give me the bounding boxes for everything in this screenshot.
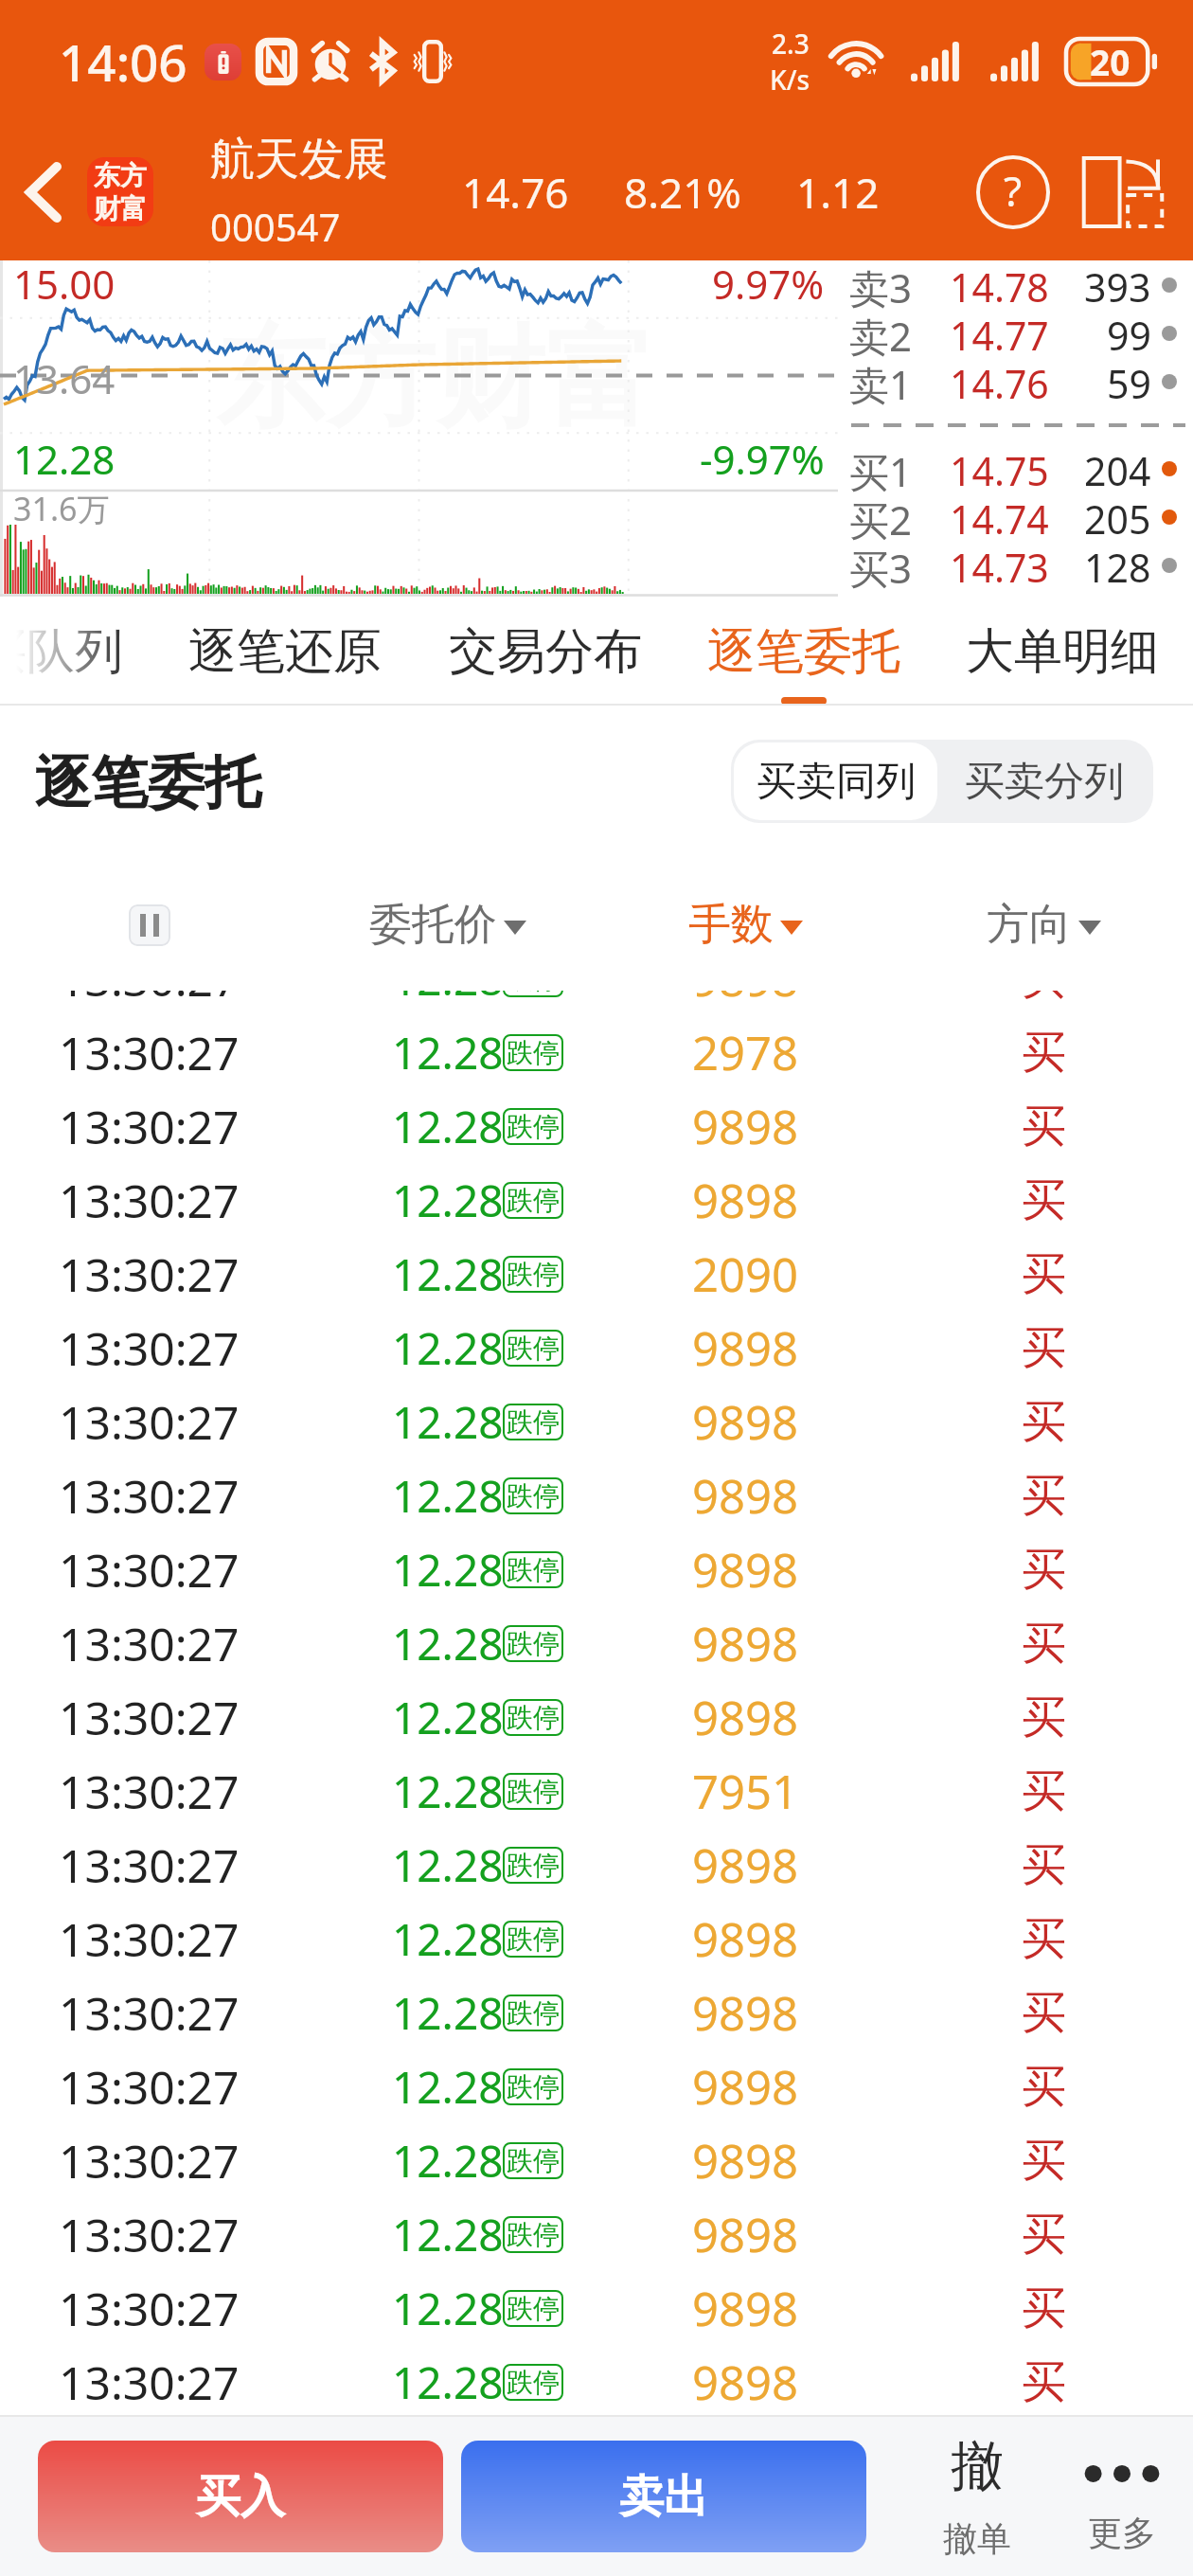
staticText: 跌停 [507,1184,560,1217]
button[interactable]: Back [0,123,87,260]
button[interactable]: 手数 [596,858,895,992]
staticText: 9898 [692,1981,799,2045]
staticText: 12.28 [392,2352,504,2412]
staticText: 12.28 [392,2279,504,2338]
button[interactable]: 卖1 [838,357,1193,405]
button[interactable]: 13:30:27 [0,1163,1193,1237]
staticText: 买 [1022,2281,1066,2336]
staticText: 跌停 [507,1479,560,1512]
staticText: 2090 [692,1243,799,1306]
staticText: 买 [1022,1099,1066,1154]
staticText: 买入 [196,2469,285,2525]
button[interactable]: Screenshot [1077,154,1168,230]
button[interactable]: Pause [129,904,170,946]
button[interactable]: 13:30:27 [0,1089,1193,1163]
staticText: 东方 [94,159,147,192]
staticText: 12.28 [392,1614,504,1673]
staticText: 13:30:27 [59,1908,240,1970]
button[interactable]: More [1040,2417,1193,2576]
staticText: 买卖分列 [965,757,1124,807]
staticText: 跌停 [507,1923,560,1956]
staticText: 13:30:27 [59,1391,240,1453]
button[interactable]: 13:30:27 [0,1311,1193,1385]
staticText: 9898 [692,1538,799,1601]
staticText: 大单明细 [966,621,1159,682]
staticText: 逐笔委托 [707,621,900,682]
button[interactable]: 大单明细 [934,597,1191,706]
button[interactable]: 13:30:27 [0,1902,1193,1976]
button[interactable]: 13:30:27 [0,991,1193,1015]
button[interactable]: East Money [87,157,153,226]
staticText: 9898 [692,2277,799,2340]
button[interactable]: 13:30:27 [0,1458,1193,1532]
staticText: 13:30:27 [59,2278,240,2339]
button[interactable]: Help [964,143,1062,241]
staticText: 跌停 [507,1701,560,1734]
staticText: 14.76 [950,357,1049,405]
staticText: 9898 [692,1907,799,1971]
staticText: 9.97% [712,257,825,311]
button[interactable]: 方向 [895,858,1193,992]
button[interactable]: 13:30:27 [0,1976,1193,2049]
button[interactable]: 13:30:27 [0,2271,1193,2345]
staticText: 逐笔委托 [34,747,261,819]
staticText: 2978 [692,1021,799,1084]
staticText: 买 [1022,1320,1066,1376]
staticText: 204 [1084,444,1151,492]
button[interactable]: 买卖分列 [937,742,1150,820]
button[interactable]: 买卖同列 [734,742,937,820]
button[interactable]: 13:30:27 [0,1606,1193,1680]
staticText: 跌停 [507,1849,560,1882]
button[interactable]: 撤 [895,2417,1059,2576]
button[interactable]: 13:30:27 [0,2345,1193,2415]
staticText: K/s [770,62,810,98]
staticText: 12.28 [392,1171,504,1230]
staticText: 跌停 [507,2366,560,2399]
staticText: 12.28 [392,1835,504,1895]
staticText: 买2 [849,492,913,541]
staticText: 12.28 [392,2205,504,2264]
button[interactable]: 买入 [38,2441,443,2552]
staticText: 撤 [951,2433,1004,2500]
staticText: 买1 [849,444,913,492]
staticText: 12.28 [392,2057,504,2117]
button[interactable]: 买1 [838,444,1193,492]
staticText: 31.6万 [13,487,110,530]
button[interactable]: 13:30:27 [0,2123,1193,2197]
button[interactable]: 13:30:27 [0,1828,1193,1902]
button[interactable]: 13:30:27 [0,2049,1193,2123]
button[interactable]: 卖出 [461,2441,866,2552]
staticText: 跌停 [507,1332,560,1365]
button[interactable]: 逐笔委托 [675,597,933,706]
button[interactable]: 委买队列 [0,597,155,706]
staticText: 13:30:27 [59,1465,240,1527]
staticText: 000547 [210,201,341,252]
button[interactable]: 13:30:27 [0,1015,1193,1089]
staticText: 13:30:27 [59,991,240,1010]
button[interactable]: 买2 [838,492,1193,541]
button[interactable]: 13:30:27 [0,1754,1193,1828]
staticText: 买 [1022,1172,1066,1228]
button[interactable]: 13:30:27 [0,1237,1193,1311]
button[interactable]: 13:30:27 [0,1680,1193,1754]
staticText: 13:30:27 [59,1243,240,1305]
staticText: 跌停 [507,2218,560,2251]
button[interactable]: 13:30:27 [0,2197,1193,2271]
button[interactable]: 交易分布 [417,597,674,706]
staticText: 跌停 [507,1405,560,1439]
button[interactable]: 卖2 [838,309,1193,357]
staticText: 买 [1022,1985,1066,2041]
button[interactable]: 卖3 [838,260,1193,309]
button[interactable]: 13:30:27 [0,1385,1193,1458]
staticText: 航天发展 [210,132,388,188]
button[interactable]: 逐笔还原 [156,597,414,706]
staticText: 买 [1022,1616,1066,1672]
staticText: 手数 [688,898,774,952]
staticText: 更多 [1088,2512,1156,2554]
staticText: 12.28 [392,1023,504,1082]
staticText: 13:30:27 [59,2352,240,2413]
button[interactable]: 买3 [838,541,1193,589]
button[interactable]: 委托价 [298,858,596,992]
staticText: 128 [1084,541,1151,589]
button[interactable]: 13:30:27 [0,1532,1193,1606]
